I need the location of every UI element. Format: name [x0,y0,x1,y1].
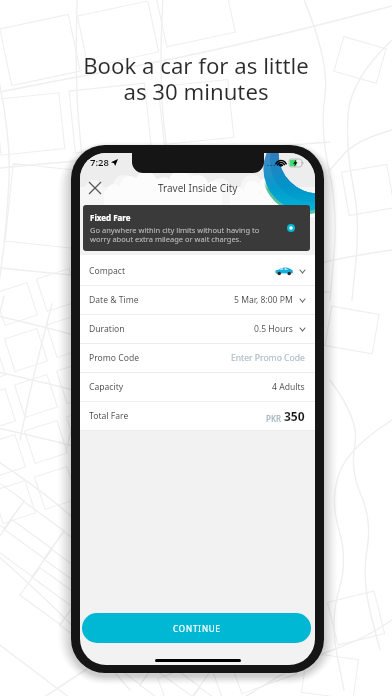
staticText: 350 [284,408,305,424]
button[interactable]: Fixed Fare [83,205,310,251]
button[interactable]: Duration [80,315,315,344]
staticText: Promo Code [89,352,140,364]
staticText: Book a car for as little as 30 minutes [83,50,309,106]
staticText: Date & Time [89,294,139,306]
staticText: Duration [89,323,125,335]
staticText: 4 Adults [272,381,305,393]
button[interactable]: Capacity [80,373,315,402]
staticText: 5 Mar, 8:00 PM [234,294,293,306]
button[interactable]: Close [84,177,106,199]
staticText: Capacity [89,381,124,393]
button[interactable]: Total Fare [80,402,315,431]
staticText: Travel Inside City [158,181,238,195]
staticText: Total Fare [89,410,129,422]
staticText: 7:28 [90,156,109,169]
button[interactable]: CONTINUE [82,613,311,643]
staticText: Enter Promo Code [231,352,305,364]
staticText: Fixed Fare [90,212,131,223]
staticText: 0.5 Hours [254,323,293,335]
button[interactable]: Compact [80,257,315,286]
button[interactable]: Date & Time [80,286,315,315]
other: Fixed fare selected [287,224,295,232]
staticText: PKR [266,413,284,424]
staticText: CONTINUE [173,623,221,634]
staticText: Compact [89,265,125,277]
button[interactable]: Promo Code [80,344,315,373]
staticText: Go anywhere within city limits without h… [90,225,260,245]
